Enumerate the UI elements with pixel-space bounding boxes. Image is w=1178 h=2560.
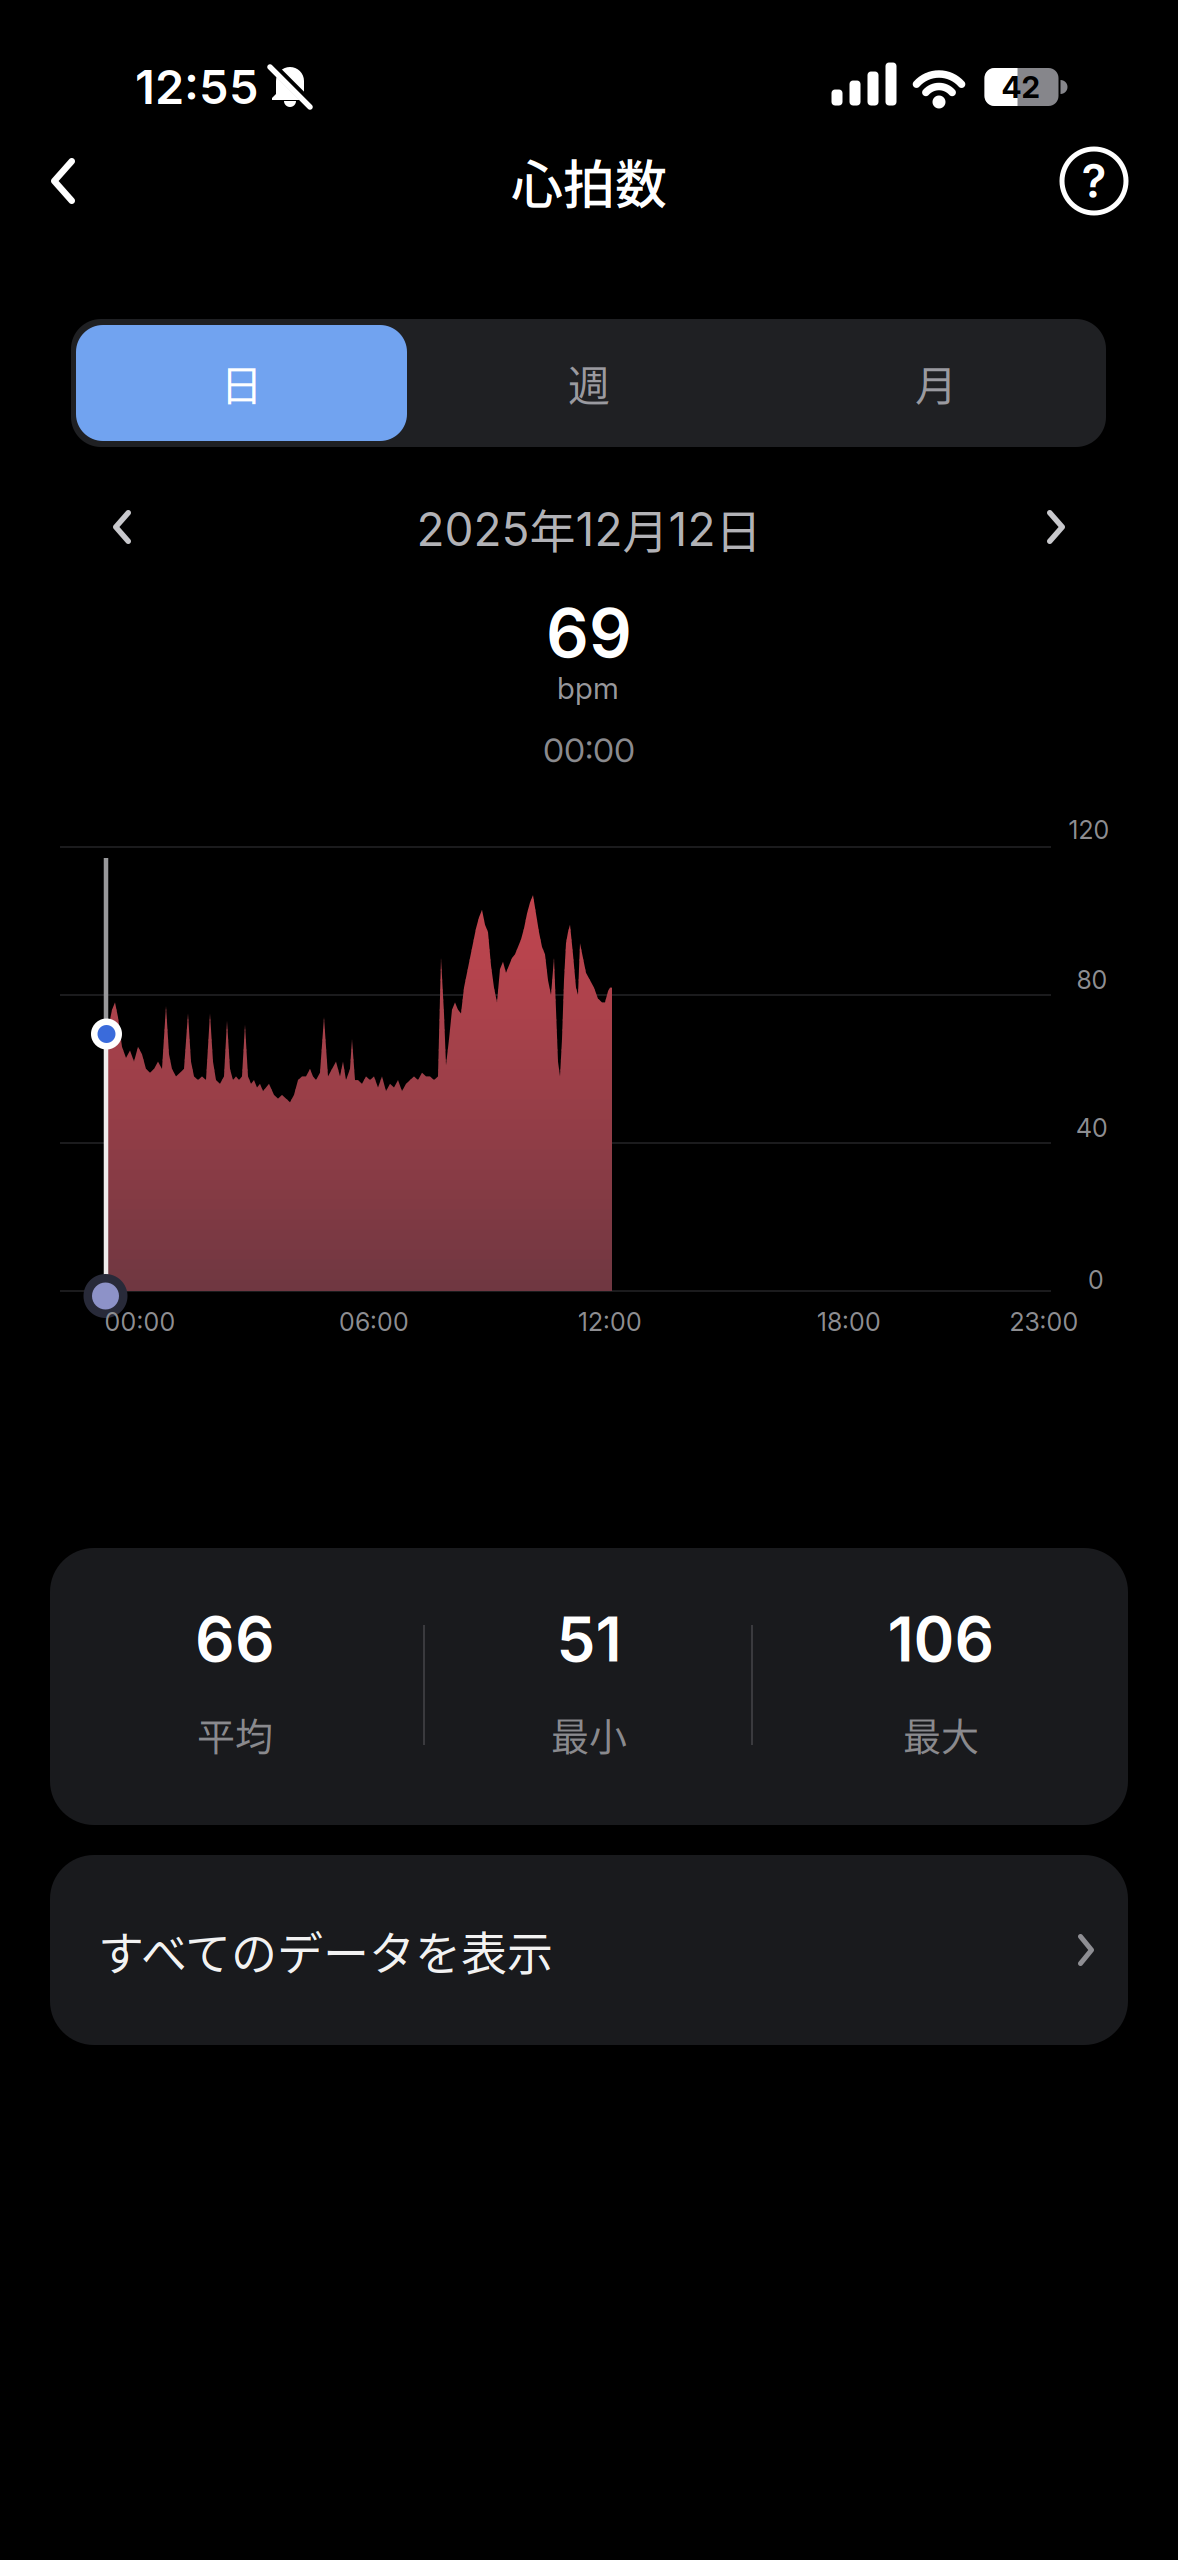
- button[interactable]: Next day: [1026, 497, 1086, 557]
- staticText: 51: [556, 1601, 621, 1676]
- staticText: 120: [1068, 815, 1109, 845]
- staticText: すべてのデータを表示: [98, 1917, 553, 1983]
- staticText: ?: [1081, 153, 1106, 209]
- staticText: 2025年12月12日: [416, 495, 761, 561]
- staticText: 心拍数: [511, 143, 667, 219]
- staticText: 66: [195, 1601, 275, 1676]
- staticText: 最大: [903, 1706, 979, 1761]
- button[interactable]: 週: [423, 325, 754, 441]
- button[interactable]: すべてのデータを表示: [50, 1855, 1128, 2045]
- button[interactable]: 月: [770, 325, 1101, 441]
- staticText: 18:00: [817, 1307, 881, 1337]
- staticText: 40: [1076, 1113, 1108, 1143]
- button[interactable]: Help: [1059, 146, 1129, 216]
- staticText: 06:00: [339, 1307, 409, 1337]
- button[interactable]: 日: [76, 325, 407, 441]
- staticText: 00:00: [104, 1307, 175, 1337]
- staticText: 42: [1001, 69, 1039, 105]
- staticText: 0: [1088, 1265, 1104, 1295]
- staticText: 最小: [551, 1706, 627, 1761]
- staticText: 00:00: [543, 729, 635, 770]
- staticText: 69: [546, 592, 632, 674]
- staticText: bpm: [557, 670, 619, 706]
- staticText: 106: [887, 1601, 994, 1676]
- button[interactable]: Back: [28, 146, 98, 216]
- staticText: 平均: [197, 1706, 273, 1761]
- staticText: 月: [915, 353, 957, 413]
- staticText: 日: [220, 353, 262, 413]
- staticText: 週: [568, 353, 610, 413]
- staticText: 12:00: [578, 1307, 642, 1337]
- staticText: 23:00: [1009, 1307, 1078, 1337]
- staticText: 12:55: [135, 59, 259, 115]
- button[interactable]: Previous day: [92, 497, 152, 557]
- staticText: 80: [1076, 965, 1107, 995]
